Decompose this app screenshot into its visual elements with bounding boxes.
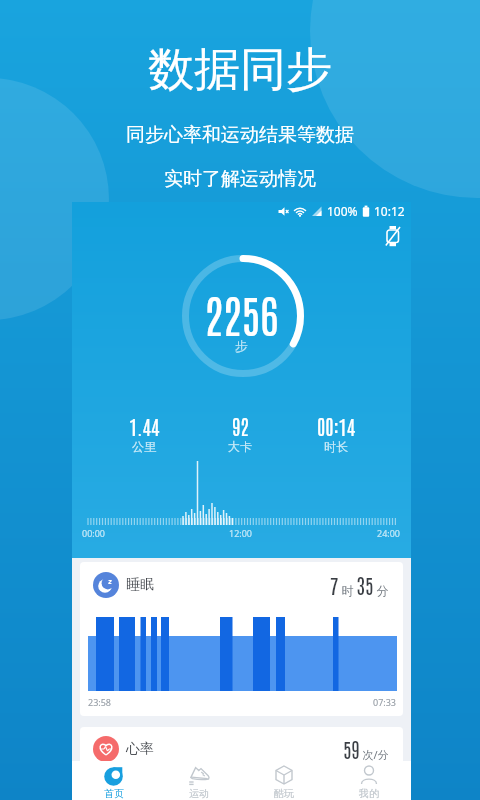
button[interactable]: 酷玩 bbox=[252, 761, 316, 800]
staticText: 同步心率和运动结果等数据 bbox=[126, 123, 354, 147]
staticText: 24:00 bbox=[377, 527, 401, 539]
staticText: 我的 bbox=[359, 787, 379, 800]
staticText: 100% bbox=[327, 203, 358, 219]
staticText: 首页 bbox=[104, 787, 124, 800]
staticText: 酷玩 bbox=[274, 787, 294, 800]
staticText: 实时了解运动情况 bbox=[164, 167, 316, 191]
staticText: 59 次/分 bbox=[343, 736, 389, 762]
staticText: 1.44 bbox=[129, 413, 160, 439]
button[interactable]: 睡眠 bbox=[80, 562, 403, 716]
staticText: 07:33 bbox=[373, 696, 397, 708]
staticText: 2256 bbox=[204, 284, 279, 342]
staticText: 心率 bbox=[126, 740, 154, 758]
staticText: 大卡 bbox=[228, 439, 252, 454]
staticText: 睡眠 bbox=[126, 576, 154, 594]
staticText: 数据同步 bbox=[148, 41, 332, 99]
button[interactable]: 运动 bbox=[167, 761, 231, 800]
staticText: 时长 bbox=[324, 439, 348, 454]
staticText: 23:58 bbox=[88, 696, 112, 708]
staticText: 00:14 bbox=[317, 413, 356, 439]
button[interactable]: 首页 bbox=[82, 761, 146, 800]
staticText: 公里 bbox=[132, 439, 156, 454]
staticText: 12:00 bbox=[229, 527, 253, 539]
staticText: 92 bbox=[232, 413, 249, 439]
staticText: 00:00 bbox=[82, 527, 106, 539]
staticText: 步 bbox=[235, 338, 248, 354]
button[interactable] bbox=[384, 224, 402, 249]
button[interactable]: 心率 bbox=[80, 727, 403, 800]
staticText: 7 时 35 分 bbox=[330, 572, 389, 599]
button[interactable]: 我的 bbox=[337, 761, 401, 800]
staticText: 10:12 bbox=[374, 203, 405, 219]
staticText: 运动 bbox=[189, 787, 209, 800]
